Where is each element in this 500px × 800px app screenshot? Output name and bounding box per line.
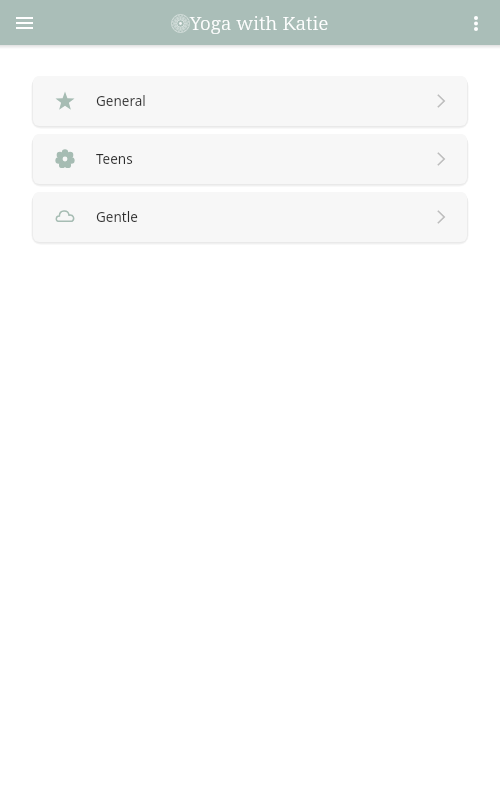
button[interactable]: More options xyxy=(460,7,492,39)
staticText: Yoga with Katie xyxy=(190,10,329,36)
staticText: General xyxy=(96,92,146,110)
button[interactable]: Gentle xyxy=(33,192,467,242)
button[interactable]: General xyxy=(33,76,467,126)
staticText: Gentle xyxy=(96,208,138,226)
staticText: Teens xyxy=(96,150,133,168)
button[interactable]: Teens xyxy=(33,134,467,184)
button[interactable]: Open navigation menu xyxy=(8,7,40,39)
